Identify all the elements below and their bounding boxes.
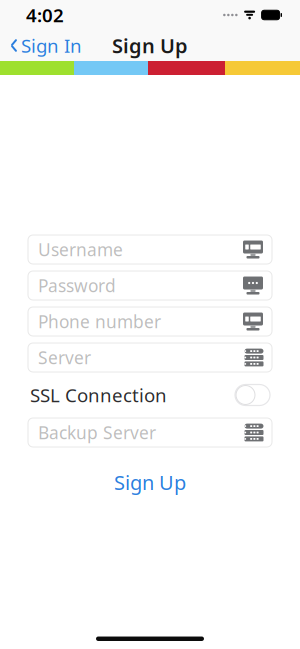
button[interactable]: Sign Up (94, 461, 206, 504)
staticText: Backup Server (38, 421, 156, 444)
staticText: Password (38, 274, 116, 297)
staticText: Sign Up (114, 469, 186, 496)
staticText: Username (38, 238, 123, 261)
staticText: Phone number (38, 310, 161, 333)
staticText: 4:02 (26, 3, 64, 27)
staticText: Server (38, 346, 91, 369)
button[interactable]: Server (28, 343, 272, 372)
button[interactable]: Sign In (0, 27, 90, 64)
button[interactable]: Username (28, 235, 272, 264)
button[interactable]: SSL Connection (28, 380, 272, 410)
button[interactable]: Phone number (28, 307, 272, 336)
button[interactable]: Backup Server (28, 418, 272, 447)
staticText: Sign Up (112, 32, 188, 59)
staticText: SSL Connection (30, 383, 167, 407)
button[interactable]: Password (28, 271, 272, 300)
staticText: Sign In (21, 33, 82, 58)
